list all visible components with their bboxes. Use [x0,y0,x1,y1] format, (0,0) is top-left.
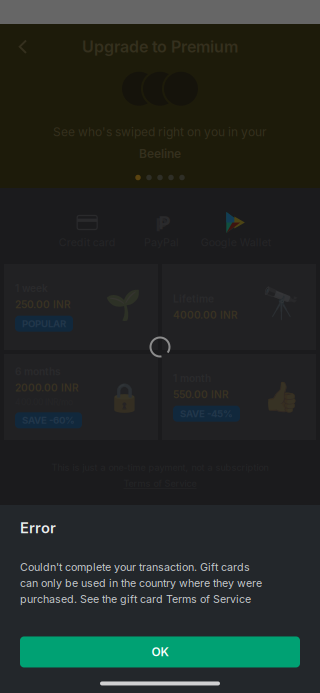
staticText: 4000.00 INR [173,309,238,321]
staticText: 🔒 [107,382,142,414]
button[interactable]: OK [20,636,300,667]
staticText: SAVE -60% [22,414,75,426]
staticText: 1 month [173,372,211,384]
staticText: 2000.00 INR [15,382,79,394]
staticText: P [155,213,167,236]
staticText: 250.00 INR [15,298,71,311]
button[interactable]: 🔒 [4,354,158,440]
staticText: 🔭 [262,286,300,321]
staticText: SAVE -45% [180,408,233,419]
staticText: Error [20,519,56,537]
button[interactable]: Google Wallet [199,209,273,251]
staticText: P [158,211,170,234]
staticText: 👍 [263,380,300,413]
staticText: Upgrade to Premium [82,37,238,56]
staticText: 🌱 [105,288,142,321]
staticText: Beeline [139,146,181,161]
button[interactable]: 🔭 [162,264,316,350]
button[interactable]: Credit card [50,209,124,251]
staticText: 550.00 INR [173,388,229,401]
staticText: Couldn't complete your transaction. Gift… [20,561,262,605]
staticText: POPULAR [22,318,66,329]
staticText: OK [151,645,168,659]
staticText: 1 week [15,282,48,294]
button[interactable]: 👍 [162,354,316,440]
button[interactable]: 🌱 [4,264,158,350]
staticText: See who's swiped right on you in your [53,125,267,139]
